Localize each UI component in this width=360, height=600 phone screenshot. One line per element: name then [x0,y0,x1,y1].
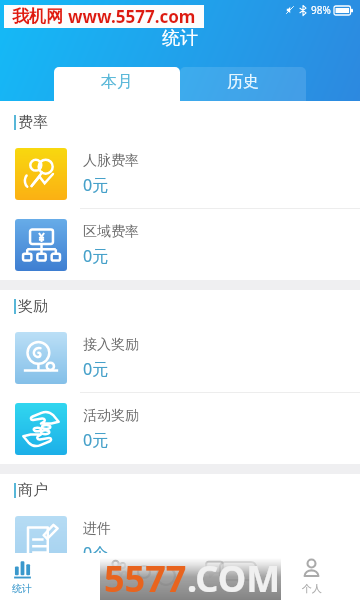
staticText: 商户 [18,481,48,500]
staticText: 人脉费率 [83,152,139,170]
staticText: 0个 [83,542,109,564]
button[interactable]: 服务 [166,553,263,600]
staticText: 0元 [83,358,109,380]
staticText: 奖励 [18,297,48,316]
staticText: 5577 [104,554,187,600]
staticText: 接入奖励 [83,336,139,354]
staticText: 区域费率 [83,223,139,241]
staticText: 统计 [12,582,32,595]
staticText: .COM [187,554,281,600]
button[interactable]: 接入奖励 [0,322,360,393]
button[interactable]: 历史 [180,67,306,101]
staticText: 服务 [205,582,225,595]
button[interactable]: 人脉费率 [0,138,360,209]
staticText: 活动奖励 [83,407,139,425]
button[interactable]: 费率 [0,577,360,600]
button[interactable]: 本月 [54,67,180,101]
button[interactable]: 区域费率 [0,209,360,280]
staticText: 费率 [18,113,48,132]
staticText: 0元 [83,174,109,196]
button[interactable]: 活动奖励 [0,393,360,464]
staticText: 运营 [108,582,128,595]
staticText: 0元 [83,429,109,451]
staticText: 98% [311,3,331,17]
staticText: 个人 [302,582,322,595]
staticText: 进件 [83,520,111,538]
staticText: 费率 [83,591,111,600]
staticText: www.5577.com [68,5,196,28]
button[interactable]: 进件 [0,506,360,577]
staticText: 历史 [227,72,259,92]
staticText: 我机网 [12,6,63,27]
staticText: 0元 [83,245,109,267]
button[interactable]: 个人 [263,553,360,600]
button[interactable]: 运营 [70,553,166,600]
staticText: 统计 [162,27,198,50]
button[interactable]: 统计 [0,553,70,600]
staticText: 本月 [101,72,133,92]
